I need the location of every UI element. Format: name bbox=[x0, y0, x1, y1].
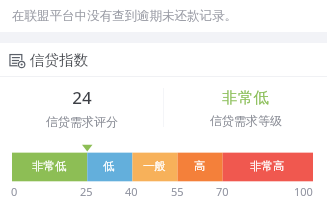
staticText: 70 bbox=[216, 184, 229, 199]
button[interactable]: 非常低 bbox=[164, 77, 327, 138]
staticText: 40 bbox=[125, 184, 138, 199]
button[interactable]: 24 bbox=[0, 77, 163, 138]
staticText: 信贷指数 bbox=[30, 51, 88, 69]
staticText: 非常高 bbox=[250, 159, 285, 173]
other: 信贷指数 bbox=[9, 52, 25, 68]
button[interactable]: 信贷指数 bbox=[0, 43, 327, 76]
staticText: 非常低 bbox=[222, 88, 269, 108]
staticText: 24 bbox=[72, 86, 92, 109]
staticText: 在联盟平台中没有查到逾期未还款记录。 bbox=[12, 8, 237, 24]
staticText: 信贷需求评分 bbox=[46, 114, 118, 129]
staticText: 0 bbox=[11, 184, 18, 199]
staticText: 一般 bbox=[143, 159, 166, 173]
staticText: 55 bbox=[171, 184, 184, 199]
staticText: 信贷需求等级 bbox=[210, 113, 282, 128]
staticText: 100 bbox=[294, 184, 313, 199]
staticText: 非常低 bbox=[32, 159, 67, 173]
staticText: 低 bbox=[103, 159, 115, 173]
staticText: 25 bbox=[80, 184, 93, 199]
staticText: 高 bbox=[194, 159, 206, 173]
